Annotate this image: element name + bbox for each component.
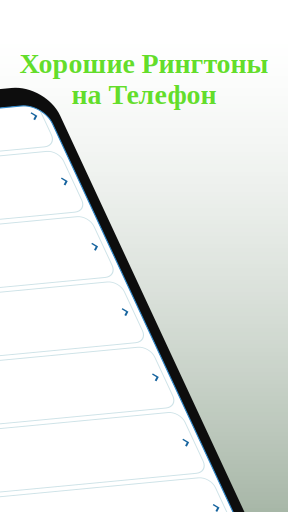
staticText: на Телефон <box>71 79 216 110</box>
staticText: Хорошие Рингтоны <box>19 48 268 79</box>
